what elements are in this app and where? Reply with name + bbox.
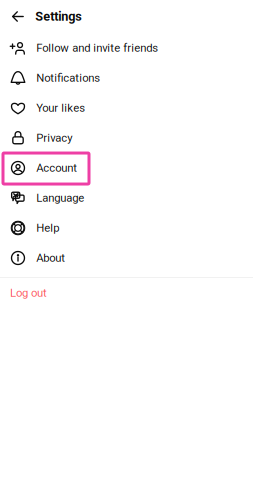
button[interactable]: Language (0, 183, 253, 213)
button[interactable]: Privacy (0, 123, 253, 153)
button[interactable]: Back (0, 1, 27, 32)
button[interactable]: About (0, 243, 253, 273)
button[interactable]: Your likes (0, 93, 253, 123)
staticText: Account (36, 161, 77, 175)
staticText: Privacy (36, 131, 72, 145)
staticText: Settings (35, 9, 82, 24)
button[interactable]: Account (0, 153, 253, 183)
button[interactable]: Help (0, 213, 253, 243)
staticText: About (36, 251, 65, 265)
button[interactable]: Log out (0, 278, 253, 308)
button[interactable]: Follow and invite friends (0, 33, 253, 63)
staticText: Help (36, 221, 59, 235)
staticText: Language (36, 191, 84, 205)
staticText: Log out (10, 286, 47, 300)
staticText: Your likes (36, 101, 85, 115)
staticText: Follow and invite friends (36, 41, 158, 55)
staticText: Notifications (36, 71, 100, 85)
button[interactable]: Notifications (0, 63, 253, 93)
